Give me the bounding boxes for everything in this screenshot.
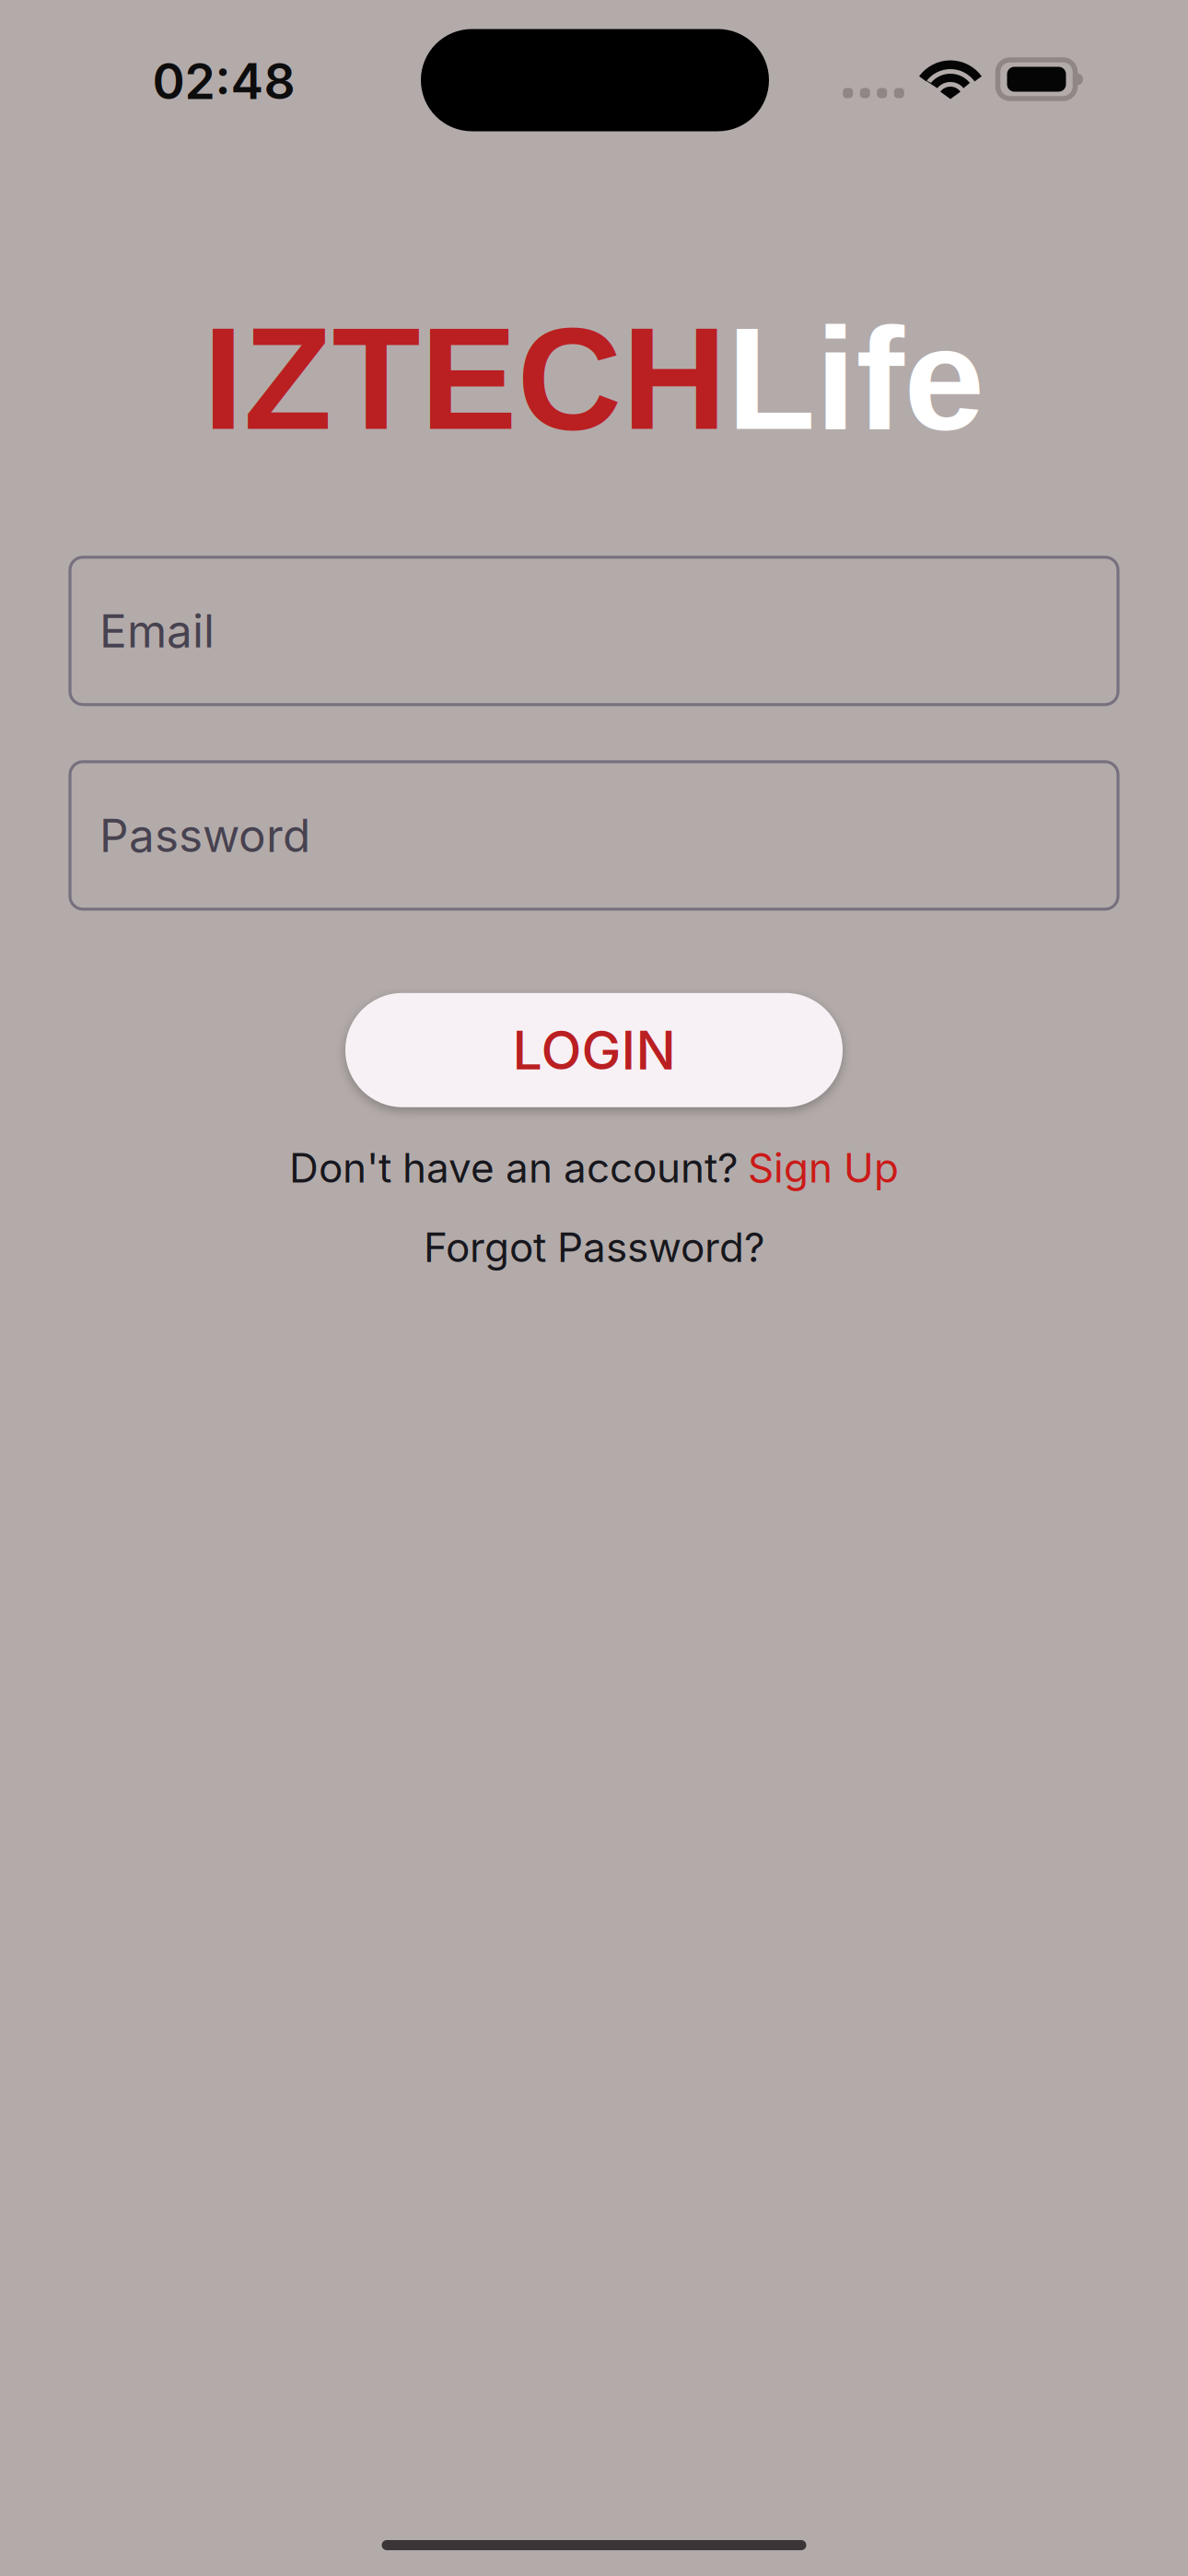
staticText: LOGIN (512, 1018, 676, 1082)
staticText: IZTECH (203, 298, 727, 460)
staticText: Email (99, 603, 215, 658)
button[interactable]: Email (70, 557, 1118, 705)
button[interactable]: Password (70, 762, 1118, 909)
staticText: 02:48 (152, 51, 295, 111)
button[interactable]: Sign Up (748, 1143, 899, 1192)
staticText: Don't have an account? (289, 1143, 738, 1192)
staticText: Sign Up (748, 1143, 899, 1192)
staticText: Password (99, 808, 310, 863)
staticText: Forgot Password? (424, 1223, 764, 1272)
button[interactable]: Forgot Password? (424, 1223, 764, 1272)
button[interactable]: LOGIN (345, 993, 843, 1107)
staticText: Life (727, 298, 985, 460)
